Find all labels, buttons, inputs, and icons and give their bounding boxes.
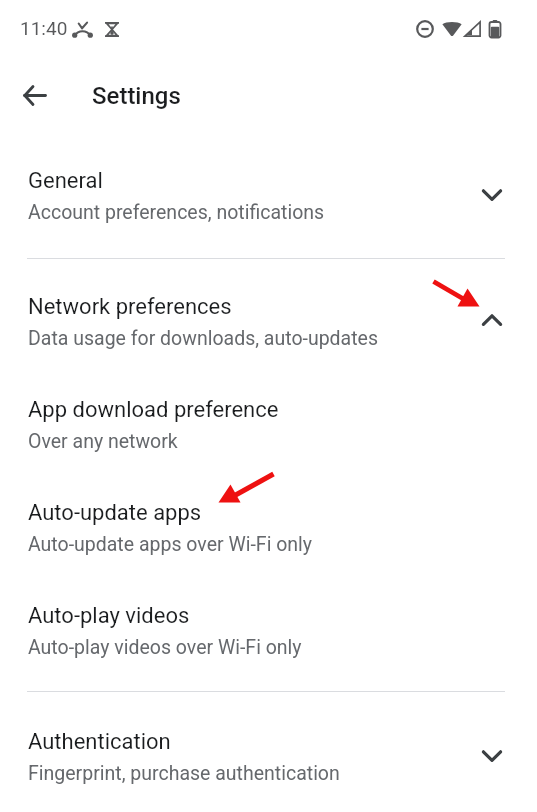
button[interactable]: Expand: [468, 732, 516, 780]
staticText: 11:40: [20, 17, 68, 39]
staticText: Over any network: [28, 430, 178, 453]
staticText: Auto-play videos over Wi-Fi only: [28, 636, 302, 659]
button[interactable]: App download preference: [0, 382, 537, 452]
button[interactable]: Expand: [468, 171, 516, 219]
staticText: Settings: [92, 82, 181, 110]
staticText: Auto-play videos: [28, 603, 190, 629]
button[interactable]: Collapse: [468, 296, 516, 344]
button[interactable]: Back: [12, 73, 56, 117]
button[interactable]: Authentication: [0, 714, 537, 784]
staticText: Authentication: [28, 729, 171, 755]
staticText: Fingerprint, purchase authentication: [28, 762, 340, 785]
staticText: App download preference: [28, 397, 279, 423]
staticText: Auto-update apps over Wi-Fi only: [28, 533, 313, 556]
staticText: Data usage for downloads, auto-updates: [28, 327, 379, 350]
staticText: Account preferences, notifications: [28, 201, 325, 224]
staticText: Auto-update apps: [28, 500, 202, 526]
button[interactable]: General: [0, 153, 537, 223]
staticText: General: [28, 168, 103, 194]
button[interactable]: Network preferences: [0, 279, 537, 349]
button[interactable]: Auto-update apps: [0, 485, 537, 555]
staticText: Network preferences: [28, 294, 232, 320]
button[interactable]: Auto-play videos: [0, 588, 537, 658]
